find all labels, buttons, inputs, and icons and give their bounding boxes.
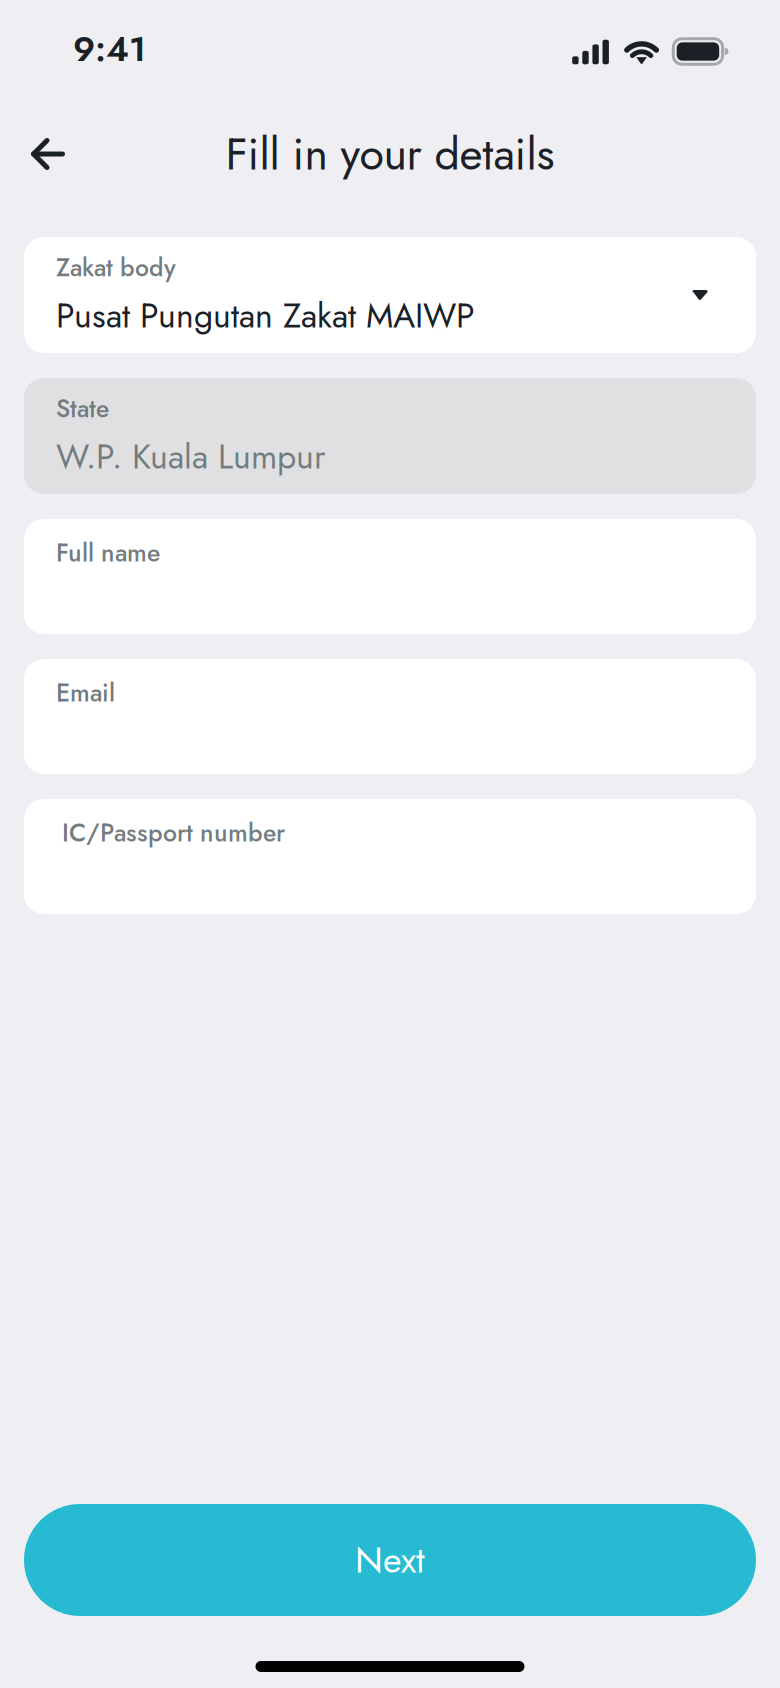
staticText: Full name xyxy=(56,535,160,571)
staticText: Fill in your details xyxy=(225,122,554,186)
button[interactable]: IC/Passport number xyxy=(24,799,756,914)
staticText: Email xyxy=(56,675,115,711)
staticText: W.P. Kuala Lumpur xyxy=(56,432,326,481)
button[interactable]: Email xyxy=(24,659,756,774)
staticText: Pusat Pungutan Zakat MAIWP xyxy=(56,291,474,340)
staticText: Next xyxy=(355,1534,425,1586)
staticText: Zakat body xyxy=(56,250,176,285)
button[interactable]: Zakat body xyxy=(24,237,756,353)
button[interactable]: Back xyxy=(12,118,84,190)
staticText: IC/Passport number xyxy=(62,815,285,851)
staticText: State xyxy=(56,391,109,426)
staticText: 9:41 xyxy=(73,24,146,74)
button[interactable]: Next xyxy=(24,1504,756,1616)
button[interactable]: Full name xyxy=(24,519,756,634)
